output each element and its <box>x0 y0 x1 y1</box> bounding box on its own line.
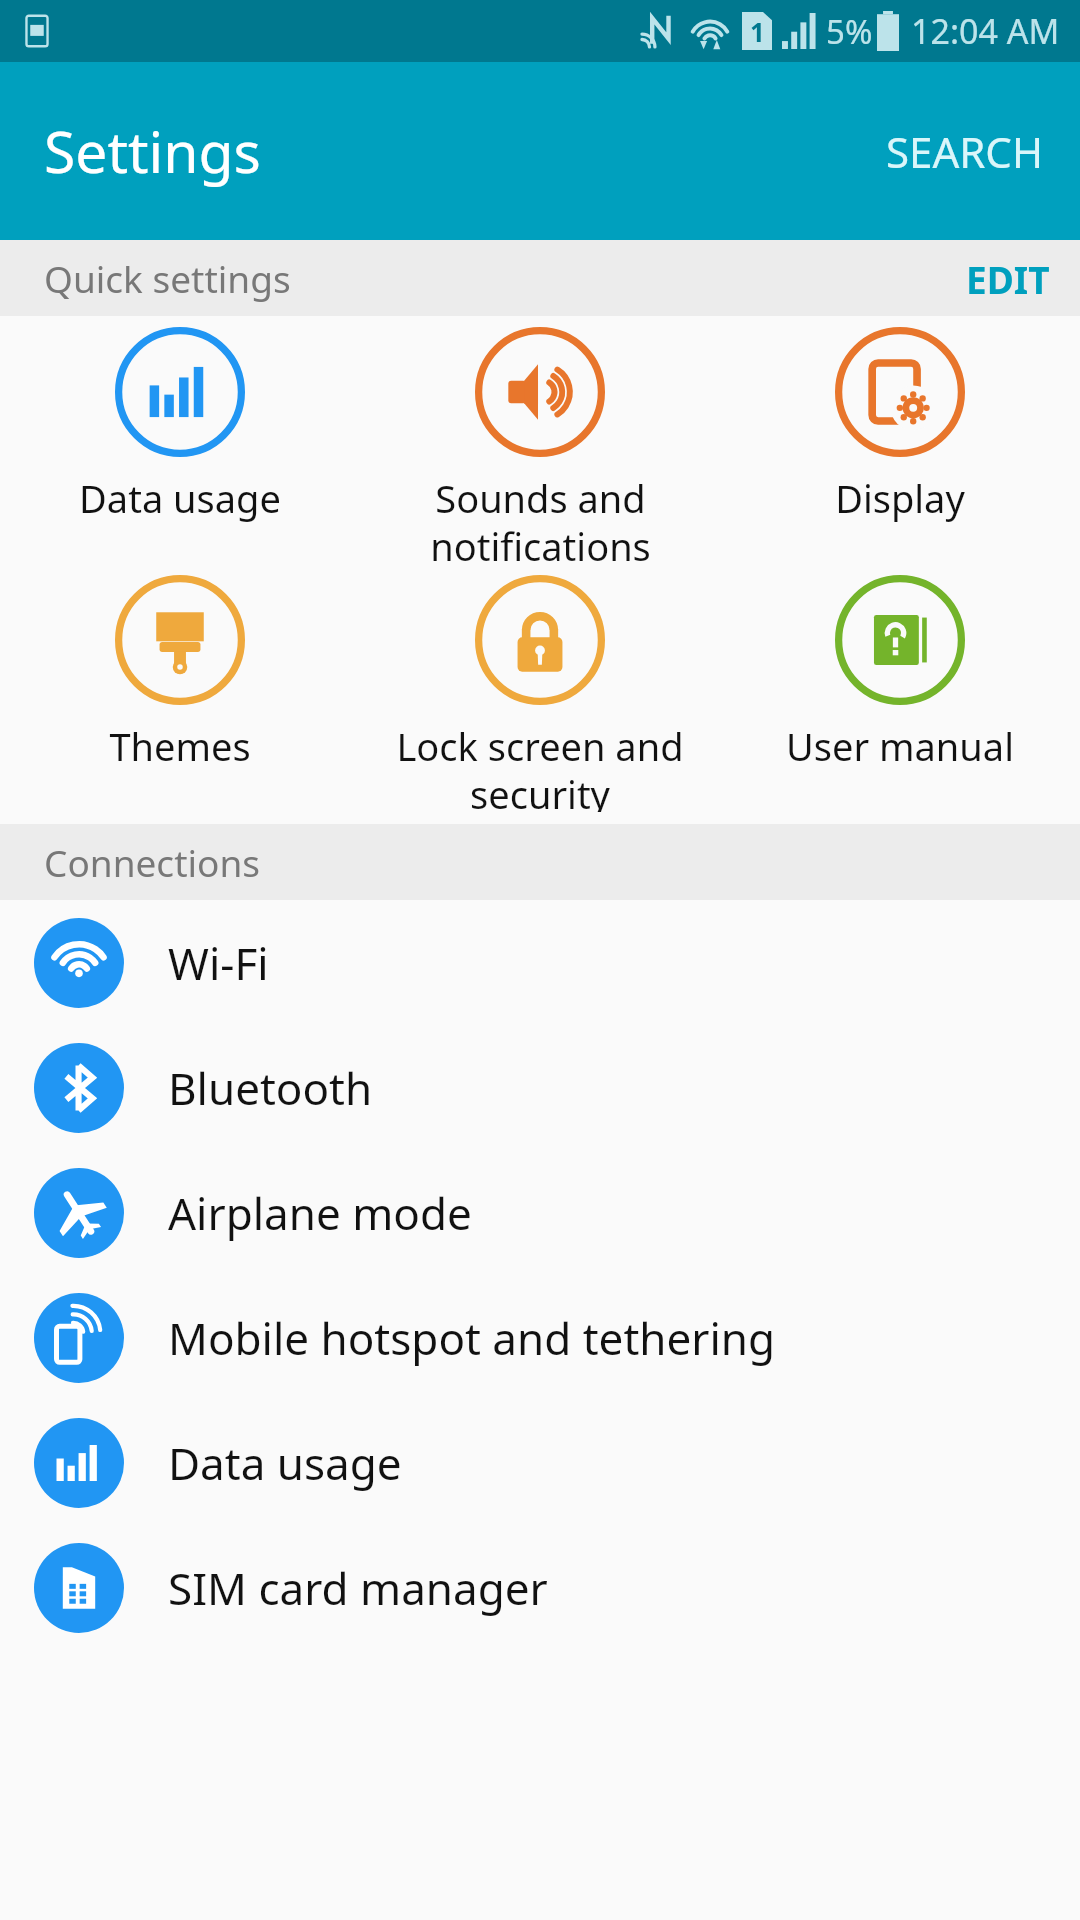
staticText: Data usage <box>79 472 281 524</box>
staticText: Quick settings <box>44 253 291 303</box>
button[interactable]: Display <box>720 316 1080 564</box>
button[interactable]: Mobile hotspot and tethering <box>0 1275 1080 1400</box>
staticText: 12:04 AM <box>911 8 1060 54</box>
button[interactable]: Data usage <box>0 1400 1080 1525</box>
staticText: Sounds and notifications <box>430 472 651 564</box>
staticText: Bluetooth <box>168 1058 373 1118</box>
staticText: Themes <box>109 720 251 772</box>
button[interactable]: EDIT <box>936 240 1080 316</box>
staticText: Mobile hotspot and tethering <box>168 1308 776 1368</box>
staticText: Connections <box>44 837 261 887</box>
button[interactable]: Airplane mode <box>0 1150 1080 1275</box>
button[interactable]: Themes <box>0 564 360 812</box>
button[interactable]: User manual <box>720 564 1080 812</box>
staticText: 1 <box>750 14 765 49</box>
staticText: User manual <box>786 720 1014 772</box>
staticText: Wi-Fi <box>168 933 269 993</box>
button[interactable]: Lock screen and security <box>360 564 720 812</box>
staticText: Lock screen and security <box>396 720 684 812</box>
button[interactable]: Sounds and notifications <box>360 316 720 564</box>
staticText: Settings <box>44 112 261 190</box>
button[interactable]: SEARCH <box>850 95 1080 208</box>
staticText: SEARCH <box>886 123 1044 180</box>
button[interactable]: Wi-Fi <box>0 900 1080 1025</box>
staticText: SIM card manager <box>168 1558 548 1618</box>
button[interactable]: Data usage <box>0 316 360 564</box>
staticText: 5% <box>826 9 873 54</box>
staticText: Display <box>835 472 965 524</box>
button[interactable]: SIM card manager <box>0 1525 1080 1650</box>
staticText: Airplane mode <box>168 1183 472 1243</box>
button[interactable]: Bluetooth <box>0 1025 1080 1150</box>
staticText: Data usage <box>168 1433 402 1493</box>
staticText: EDIT <box>966 254 1050 302</box>
